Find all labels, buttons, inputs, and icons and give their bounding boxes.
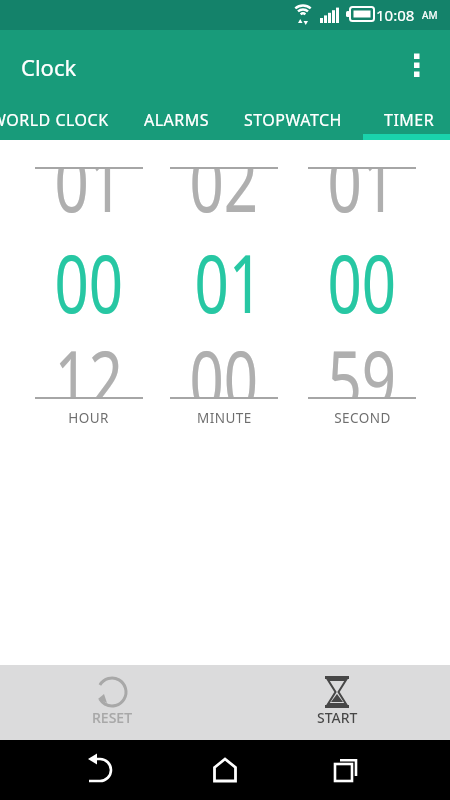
staticText: 01 <box>54 126 123 220</box>
button[interactable] <box>195 740 255 800</box>
staticText: SECOND <box>334 407 391 427</box>
staticText: STOPWATCH <box>244 109 342 131</box>
staticText: START <box>317 708 358 727</box>
button[interactable] <box>316 740 376 800</box>
button[interactable] <box>402 30 450 95</box>
staticText: 12 <box>54 323 123 417</box>
button[interactable]: WORLD CLOCK <box>0 97 110 142</box>
staticText: 10:08 <box>376 5 415 25</box>
staticText: MINUTE <box>197 407 252 427</box>
button[interactable]: RESET <box>52 665 172 740</box>
button[interactable]: STOPWATCH <box>243 97 343 142</box>
button[interactable] <box>70 740 130 800</box>
staticText: Clock <box>21 52 77 82</box>
staticText: ALARMS <box>144 109 210 131</box>
button[interactable]: TIMER <box>369 97 449 142</box>
staticText: TIMER <box>384 109 435 131</box>
staticText: 00 <box>54 227 123 321</box>
staticText: 00 <box>189 323 258 417</box>
staticText: 02 <box>189 126 258 220</box>
staticText: RESET <box>92 708 133 727</box>
staticText: 59 <box>327 323 396 417</box>
button[interactable]: ALARMS <box>137 97 217 142</box>
staticText: 00 <box>327 227 396 321</box>
staticText: 01 <box>327 126 396 220</box>
staticText: HOUR <box>68 407 110 427</box>
staticText: WORLD CLOCK <box>0 109 109 131</box>
button[interactable]: START <box>277 665 397 740</box>
staticText: AM <box>422 8 438 22</box>
staticText: 01 <box>194 227 263 321</box>
